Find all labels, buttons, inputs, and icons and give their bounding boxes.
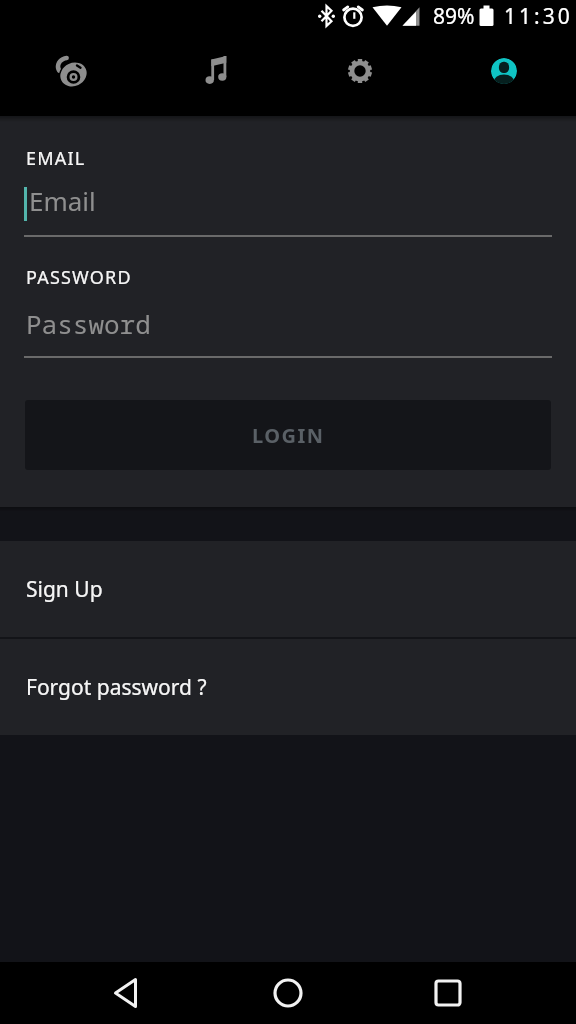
button[interactable]: LOGIN [25,400,551,470]
button[interactable] [432,33,576,116]
staticText: 11:30 [504,2,573,31]
staticText: Email [29,183,96,218]
staticText: EMAIL [26,146,86,171]
button[interactable]: Email [0,183,576,218]
button[interactable] [257,962,319,1024]
button[interactable]: Password [0,306,576,341]
button[interactable] [98,962,160,1024]
staticText: Password [26,306,151,341]
button[interactable] [417,962,479,1024]
button[interactable]: Forgot password ? [0,639,576,735]
button[interactable] [0,33,144,116]
staticText: Sign Up [26,575,103,604]
staticText: Forgot password ? [26,673,207,702]
staticText: LOGIN [252,422,325,449]
button[interactable] [144,33,288,116]
staticText: 89% [433,2,475,31]
staticText: PASSWORD [26,265,132,290]
button[interactable] [288,33,432,116]
button[interactable]: Sign Up [0,541,576,637]
